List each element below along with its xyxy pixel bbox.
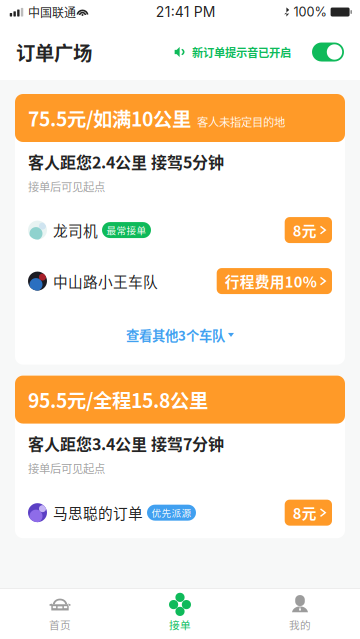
button[interactable]: 马思聪的订单: [28, 487, 332, 538]
staticText: 客人距您2.4公里 接驾5分钟: [28, 150, 224, 173]
button[interactable]: 我的: [240, 588, 360, 638]
staticText: 75.5元/如满10公里: [28, 104, 191, 132]
staticText: 客人距您3.4公里 接驾7分钟: [28, 432, 224, 455]
staticText: 8元: [293, 219, 317, 241]
button[interactable]: 龙司机: [28, 205, 332, 256]
staticText: 我的: [289, 617, 311, 632]
button[interactable]: 接单: [120, 588, 240, 638]
staticText: 接单后可见起点: [28, 178, 105, 195]
staticText: 行程费用10%: [225, 270, 317, 292]
button[interactable]: 新订单提示音已开启: [174, 37, 344, 67]
button[interactable]: 查看其他3个车队: [28, 307, 332, 345]
staticText: 订单广场: [16, 38, 92, 66]
button[interactable]: 8元: [285, 217, 332, 243]
staticText: [76, 9, 77, 15]
staticText: 21:41 PM: [156, 3, 216, 20]
button[interactable]: 首页: [0, 588, 120, 638]
staticText: 龙司机: [47, 219, 98, 241]
staticText: 100%: [290, 4, 331, 20]
staticText: 接单: [169, 617, 191, 632]
button[interactable]: 8元: [285, 500, 332, 526]
staticText: 新订单提示音已开启: [186, 44, 291, 60]
staticText: 中国联通: [25, 3, 76, 21]
staticText: 查看其他3个车队: [126, 325, 225, 345]
staticText: 马思聪的订单: [47, 502, 143, 523]
staticText: 中山路小王车队: [47, 270, 158, 292]
staticText: 首页: [49, 617, 71, 632]
staticText: 优先派源: [151, 506, 191, 520]
staticText: 95.5元/全程15.8公里: [28, 386, 208, 414]
staticText: 最常接单: [106, 223, 146, 237]
staticText: 接单后可见起点: [28, 460, 105, 476]
button[interactable]: 中山路小王车队: [28, 256, 332, 307]
staticText: 客人未指定目的地: [191, 113, 285, 130]
staticText: 8元: [293, 502, 317, 523]
button[interactable]: 行程费用10%: [217, 268, 332, 294]
